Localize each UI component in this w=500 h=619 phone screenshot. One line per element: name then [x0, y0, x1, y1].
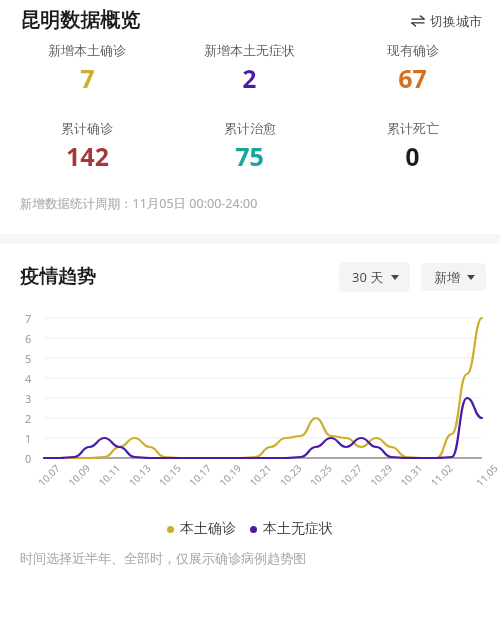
- staticText: 30 天: [352, 268, 384, 286]
- staticText: 新增本土确诊: [48, 42, 126, 58]
- staticText: 新增: [434, 269, 460, 285]
- button[interactable]: 30 天: [339, 262, 410, 292]
- staticText: 现有确诊: [387, 42, 439, 58]
- staticText: 累计死亡: [387, 120, 439, 136]
- staticText: 昆明数据概览: [20, 8, 140, 33]
- staticText: 新增数据统计周期：11月05日 00:00-24:00: [20, 195, 258, 212]
- staticText: 本土无症状: [263, 520, 333, 538]
- staticText: 累计治愈: [224, 120, 276, 136]
- staticText: 0: [405, 139, 420, 173]
- staticText: 7: [80, 61, 95, 95]
- staticText: 2: [242, 61, 257, 95]
- other: 切换城市: [411, 15, 425, 27]
- staticText: 累计确诊: [61, 120, 113, 136]
- button[interactable]: 切换城市: [407, 9, 486, 33]
- staticText: 本土确诊: [180, 520, 236, 538]
- staticText: 时间选择近半年、全部时，仅展示确诊病例趋势图: [20, 550, 306, 566]
- staticText: 新增本土无症状: [204, 42, 295, 58]
- staticText: 75: [235, 139, 264, 173]
- button[interactable]: 新增: [421, 263, 486, 291]
- staticText: 疫情趋势: [20, 265, 96, 289]
- staticText: 切换城市: [430, 13, 482, 29]
- staticText: 67: [398, 61, 427, 95]
- staticText: 142: [66, 139, 109, 173]
